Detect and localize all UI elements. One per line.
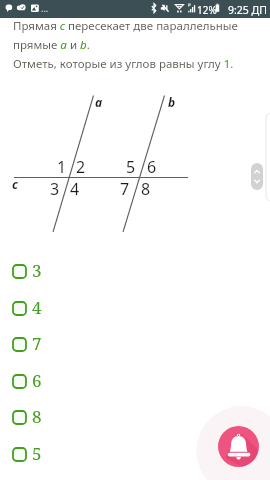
button[interactable]: 3 — [6, 260, 54, 284]
staticText: 9:25 ДП — [228, 3, 267, 17]
staticText: 6 — [147, 156, 157, 178]
staticText: 5 — [126, 156, 136, 178]
staticText: 5 — [32, 442, 42, 465]
button[interactable]: 8 — [6, 406, 54, 430]
staticText: c — [12, 176, 18, 192]
staticText: 8 — [141, 178, 151, 200]
staticText: 8 — [32, 405, 42, 428]
staticText: 7 — [32, 332, 42, 355]
staticText: 3 — [50, 178, 60, 200]
staticText: 4 — [70, 178, 80, 200]
staticText: 6 — [32, 369, 42, 392]
button[interactable]: Notifications — [218, 426, 259, 467]
staticText: 12% — [197, 3, 217, 17]
staticText: Прямая c пересекает две параллельные пря… — [13, 18, 249, 72]
staticText: 3 — [32, 259, 42, 282]
staticText: 7 — [120, 178, 130, 200]
staticText: ... — [41, 2, 49, 14]
button[interactable]: 6 — [6, 370, 54, 394]
staticText: 1 — [57, 156, 67, 178]
button[interactable]: 5 — [6, 443, 54, 467]
staticText: 2 — [76, 156, 86, 178]
staticText: b — [168, 94, 176, 110]
staticText: 4 — [32, 296, 42, 319]
button[interactable]: 7 — [6, 333, 54, 357]
staticText: a — [95, 94, 103, 110]
button[interactable]: Scroll — [251, 163, 263, 190]
button[interactable]: 4 — [6, 297, 54, 321]
